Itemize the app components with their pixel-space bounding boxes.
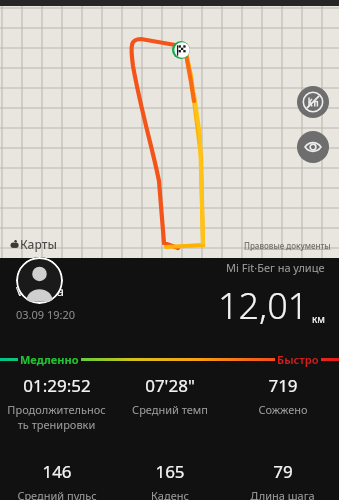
button[interactable]: 79: [226, 460, 339, 500]
button[interactable]: Карты: [10, 236, 57, 252]
staticText: 01:29:52: [23, 374, 91, 397]
staticText: 146: [42, 460, 72, 483]
staticText: Сожжено: [258, 402, 308, 417]
staticText: Средний темп: [132, 402, 208, 417]
button[interactable]: 165: [113, 460, 226, 500]
button[interactable]: 01:29:52: [0, 374, 113, 432]
button[interactable]: Hide pace: [297, 86, 329, 118]
staticText: Медленно: [20, 352, 79, 367]
staticText: Карты: [20, 236, 57, 252]
staticText: Каденс: [151, 488, 189, 500]
staticText: 12,01: [218, 281, 309, 330]
button[interactable]: Правовые документы: [244, 240, 331, 251]
button[interactable]: Profile photo: [16, 257, 63, 304]
staticText: 79: [273, 460, 293, 483]
staticText: Длина шага: [250, 488, 315, 500]
staticText: Быстро: [277, 352, 319, 367]
button[interactable]: Show track: [297, 131, 329, 163]
button[interactable]: 07'28": [113, 374, 226, 417]
staticText: Продолжительность тренировки: [6, 402, 107, 432]
staticText: Mi Fit·Бег на улице: [226, 260, 325, 275]
staticText: 07'28": [145, 374, 195, 397]
button[interactable]: 146: [0, 460, 113, 500]
staticText: 03.09 19:20: [16, 307, 76, 322]
staticText: Средний пульс: [17, 488, 97, 500]
button[interactable]: 719: [226, 374, 339, 417]
staticText: Valeriya: [16, 282, 65, 300]
staticText: 165: [155, 460, 185, 483]
staticText: км: [312, 312, 325, 326]
staticText: 719: [268, 374, 298, 397]
